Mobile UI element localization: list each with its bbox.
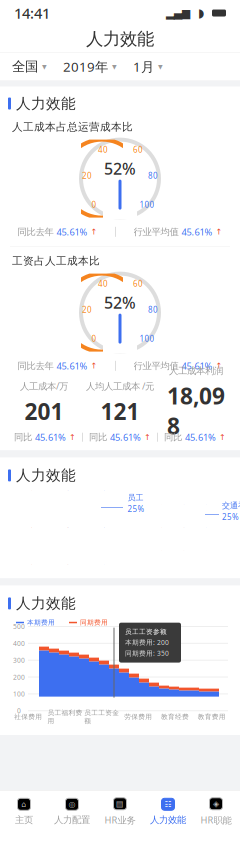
staticText: 人工成本占总运营成本比 [12, 120, 133, 134]
button[interactable]: 1月 [125, 53, 171, 79]
staticText: ☷ [164, 800, 171, 809]
staticText: ▤ [116, 799, 124, 808]
staticText: 60 [133, 144, 143, 155]
staticText: 25% [222, 511, 239, 522]
staticText: 100 [139, 333, 154, 344]
staticText: 45.61% [56, 226, 87, 238]
staticText: 0 [91, 199, 96, 210]
staticText: 2019年 [63, 58, 108, 75]
staticText: 45.61% [110, 431, 141, 443]
staticText: 201 [24, 396, 63, 426]
staticText: 20 [82, 304, 92, 315]
staticText: HR业务 [104, 814, 135, 826]
staticText: 工资占人工成本比 [12, 254, 100, 268]
staticText: 人力效能 [16, 466, 76, 484]
staticText: 52% [104, 158, 136, 179]
staticText: 员工工资参额 [125, 628, 167, 636]
staticText: ◈ [213, 799, 219, 808]
staticText: 0 [17, 706, 21, 715]
staticText: 人均人工成本 /元 [86, 380, 154, 392]
staticText: ▂▄▆ [166, 7, 190, 19]
staticText: 员工 [127, 493, 143, 502]
button[interactable]: ⌂ [0, 794, 48, 828]
staticText: 同比 [89, 431, 107, 443]
staticText: ↑ [90, 361, 97, 370]
staticText: 500 [13, 622, 25, 631]
staticText: ↑ [215, 227, 222, 236]
button[interactable]: ◎ [48, 794, 96, 828]
staticText: 本期费用 [27, 618, 55, 627]
staticText: 教育经费 [161, 713, 189, 721]
staticText: 同比 [14, 431, 32, 443]
staticText: 人力效能 [86, 28, 154, 50]
staticText: 45.61% [181, 226, 212, 238]
staticText: 全国 [12, 58, 38, 75]
staticText: 14:41 [14, 3, 50, 23]
staticText: 400 [13, 639, 25, 648]
staticText: 人工成本/万 [20, 380, 68, 392]
staticText: 40 [98, 278, 108, 289]
staticText: 80 [148, 304, 158, 315]
staticText: 45.61% [56, 360, 87, 372]
staticText: ↑ [144, 433, 151, 442]
staticText: ↑ [219, 433, 226, 442]
button[interactable]: ▤ [96, 794, 144, 828]
staticText: 45.61% [185, 431, 216, 443]
staticText: 同期费用: 350 [125, 649, 169, 658]
staticText: 员工工资金额 [84, 709, 119, 725]
staticText: 行业平均值 [133, 226, 178, 238]
staticText: 0 [91, 333, 96, 344]
staticText: 同比 [164, 431, 182, 443]
button[interactable]: 2019年 [55, 53, 125, 79]
staticText: ▾ [158, 61, 163, 72]
staticText: 121 [100, 396, 139, 426]
staticText: 同比去年 [17, 226, 53, 238]
staticText: 100 [139, 199, 154, 210]
staticText: 52% [104, 292, 136, 313]
staticText: 200 [13, 673, 25, 681]
staticText: 300 [13, 656, 25, 665]
staticText: 80 [148, 170, 158, 181]
staticText: 25% [127, 503, 144, 514]
staticText: 劳保费用 [124, 713, 152, 721]
staticText: 1月 [133, 58, 154, 75]
button[interactable]: ☷ [144, 794, 192, 828]
staticText: 40 [98, 144, 108, 155]
staticText: 18,098 [167, 381, 225, 441]
staticText: ◎ [68, 800, 75, 809]
staticText: 同比去年 [17, 360, 53, 372]
button[interactable]: ◈ [192, 794, 240, 828]
staticText: 本期费用: 200 [125, 638, 169, 647]
staticText: 45.61% [181, 360, 212, 372]
staticText: 人工成本利润 [169, 365, 223, 377]
staticText: ◗ [198, 6, 204, 20]
staticText: 20 [82, 170, 92, 181]
staticText: ↑ [90, 227, 97, 236]
staticText: ⌂ [21, 800, 26, 809]
staticText: 员工福利费用 [47, 709, 82, 725]
staticText: 人力配置 [54, 814, 90, 826]
staticText: ▾ [42, 61, 47, 72]
staticText: 45.61% [35, 431, 66, 443]
staticText: 人力效能 [150, 814, 186, 826]
staticText: ↑ [69, 433, 76, 442]
staticText: ▾ [112, 61, 117, 72]
staticText: ↑ [215, 361, 222, 370]
button[interactable]: 全国 [4, 53, 55, 79]
staticText: 社保费用 [14, 713, 42, 721]
staticText: 同期费用 [80, 618, 108, 627]
staticText: 主页 [15, 814, 33, 826]
staticText: 行业平均值 [133, 360, 178, 372]
staticText: 人力效能 [16, 94, 76, 112]
staticText: 教育费用 [198, 713, 226, 721]
staticText: HR职能 [200, 814, 231, 826]
staticText: 100 [13, 689, 25, 698]
staticText: 交通补贴 [222, 501, 240, 510]
staticText: 人力效能 [16, 594, 76, 612]
staticText: 60 [133, 278, 143, 289]
